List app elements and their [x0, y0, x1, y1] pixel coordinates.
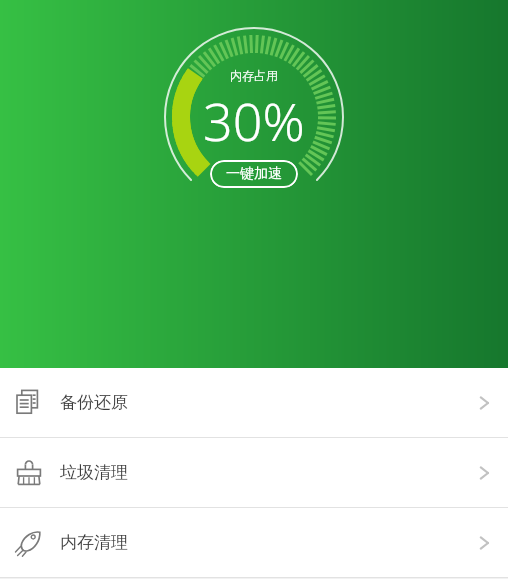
staticText: 内存占用 [230, 68, 278, 83]
button[interactable]: 垃圾清理 [0, 438, 508, 507]
button[interactable]: 内存清理 [0, 508, 508, 577]
other: Open 内存清理 [474, 533, 494, 553]
staticText: 备份还原 [60, 392, 128, 413]
button[interactable]: 一键加速 [210, 160, 298, 188]
staticText: 内存清理 [60, 532, 128, 553]
button[interactable]: 备份还原 [0, 368, 508, 437]
other: Open 垃圾清理 [474, 463, 494, 483]
staticText: 一键加速 [226, 165, 282, 183]
staticText: 垃圾清理 [60, 462, 128, 483]
staticText: 30% [203, 85, 305, 156]
other: Open 备份还原 [474, 393, 494, 413]
